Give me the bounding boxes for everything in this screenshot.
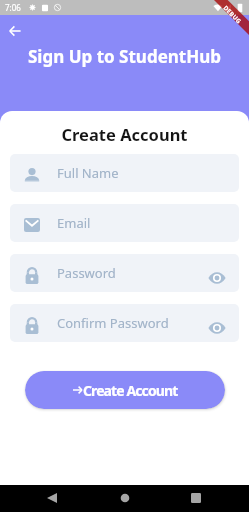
staticText: Email [57, 214, 91, 232]
staticText: DEBUG [221, 4, 243, 26]
button[interactable]: Password [10, 254, 239, 292]
button[interactable]: Home [113, 486, 137, 510]
button[interactable]: Toggle password visibility [200, 256, 234, 290]
button[interactable]: Toggle password visibility [200, 306, 234, 340]
staticText: 7:06 [5, 2, 21, 13]
staticText: Create Account [10, 123, 239, 145]
staticText: Password [57, 264, 116, 282]
button[interactable]: Recent apps [184, 486, 208, 510]
staticText: Confirm Password [57, 314, 169, 332]
button[interactable]: Full Name [10, 154, 239, 192]
button[interactable]: Back [40, 486, 64, 510]
button[interactable]: Back [3, 19, 27, 43]
staticText: Create Account [83, 381, 178, 400]
staticText: Sign Up to StudentHub [28, 45, 222, 68]
button[interactable]: Create Account [25, 371, 225, 409]
staticText: Full Name [57, 164, 119, 182]
button[interactable]: Confirm Password [10, 304, 239, 342]
button[interactable]: Email [10, 204, 239, 242]
